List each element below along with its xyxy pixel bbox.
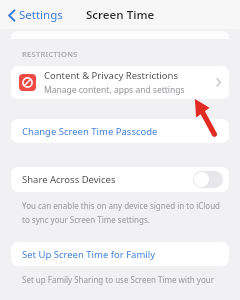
button[interactable]: Share Across Devices toggle, off	[193, 171, 223, 188]
button[interactable]: Content & Privacy Restrictions	[11, 66, 229, 99]
button[interactable]: Set Up Screen Time for Family	[11, 242, 229, 266]
staticText: Screen Time	[86, 7, 155, 23]
staticText: Manage content, apps and settings	[44, 84, 185, 96]
staticText: Content & Privacy Restrictions	[44, 69, 178, 82]
button[interactable]: Change Screen Time Passcode	[11, 119, 229, 143]
button[interactable]: Settings	[5, 4, 66, 26]
staticText: Set up Family Sharing to use Screen Time…	[22, 274, 214, 285]
staticText: Settings	[19, 7, 63, 23]
staticText: RESTRICTIONS	[22, 49, 78, 59]
staticText: Set Up Screen Time for Family	[22, 248, 156, 261]
staticText: to sync your Screen Time settings.	[22, 214, 150, 225]
staticText: Change Screen Time Passcode	[22, 125, 158, 138]
staticText: Share Across Devices	[22, 173, 193, 186]
button[interactable]: Share Across Devices	[11, 167, 229, 192]
staticText: You can enable this on any device signed…	[22, 200, 221, 211]
